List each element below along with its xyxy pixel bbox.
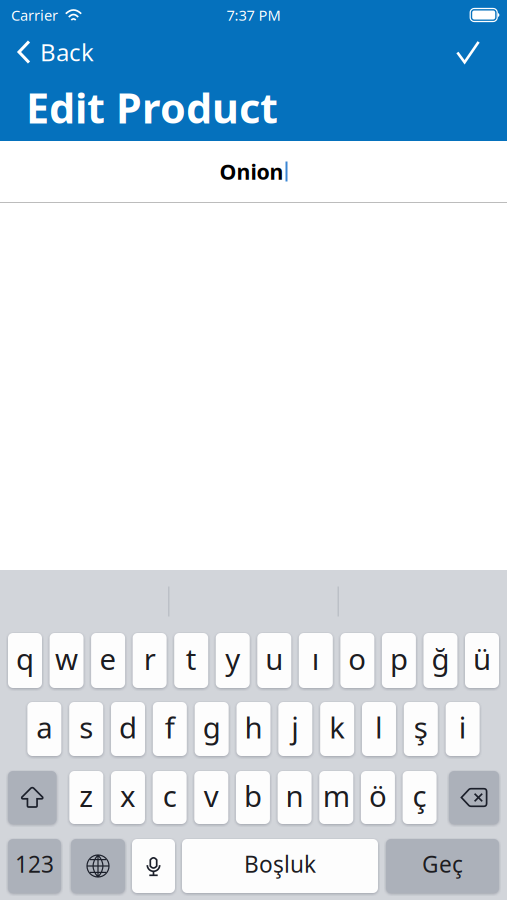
staticText: ğ <box>431 639 449 678</box>
staticText: t <box>186 639 197 678</box>
button[interactable]: z <box>69 771 103 824</box>
button[interactable]: x <box>111 771 145 824</box>
button[interactable]: ç <box>403 771 437 824</box>
staticText: ı <box>312 639 320 678</box>
button[interactable]: l <box>362 702 396 756</box>
staticText: v <box>204 776 219 815</box>
staticText: Boşluk <box>244 849 316 879</box>
button[interactable]: m <box>319 771 353 824</box>
button[interactable]: Delete <box>449 771 499 824</box>
button[interactable]: Save <box>436 30 507 74</box>
staticText: o <box>348 639 366 678</box>
button[interactable]: Geç <box>386 839 499 893</box>
button[interactable]: a <box>27 702 61 756</box>
button[interactable]: 123 <box>8 839 61 893</box>
button[interactable]: Dictation <box>132 839 175 893</box>
staticText: a <box>36 707 52 746</box>
button[interactable]: Back <box>0 30 108 74</box>
button[interactable]: t <box>174 633 208 688</box>
button[interactable]: Next keyboard <box>71 839 125 893</box>
button[interactable]: c <box>153 771 187 824</box>
staticText: r <box>144 639 156 678</box>
button[interactable]: u <box>257 633 291 688</box>
staticText: 123 <box>15 849 54 879</box>
staticText: k <box>329 707 345 746</box>
button[interactable]: Shift <box>8 771 56 824</box>
button[interactable]: r <box>133 633 167 688</box>
button[interactable]: ı <box>299 633 333 688</box>
button[interactable]: Boşluk <box>182 839 378 893</box>
button[interactable]: g <box>195 702 229 756</box>
button[interactable]: e <box>91 633 125 688</box>
staticText: Back <box>40 36 94 68</box>
staticText: p <box>390 639 408 678</box>
staticText: z <box>79 776 93 815</box>
staticText: i <box>459 707 467 746</box>
staticText: j <box>291 707 299 746</box>
staticText: y <box>225 639 240 678</box>
staticText: Carrier <box>11 5 58 25</box>
button[interactable]: k <box>320 702 354 756</box>
button[interactable]: h <box>236 702 270 756</box>
staticText: ş <box>414 707 428 746</box>
button[interactable]: f <box>153 702 187 756</box>
button[interactable]: p <box>382 633 416 688</box>
staticText: n <box>286 776 304 815</box>
button[interactable]: ğ <box>423 633 457 688</box>
staticText: h <box>244 707 262 746</box>
staticText: s <box>79 707 93 746</box>
button[interactable]: o <box>340 633 374 688</box>
staticText: q <box>16 639 34 678</box>
button[interactable]: ü <box>465 633 499 688</box>
button[interactable]: b <box>236 771 270 824</box>
button[interactable]: s <box>69 702 103 756</box>
staticText: x <box>120 776 136 815</box>
staticText: Onion <box>219 157 283 186</box>
button[interactable]: n <box>278 771 312 824</box>
staticText: e <box>100 639 117 678</box>
button[interactable]: q <box>8 633 42 688</box>
staticText: m <box>323 776 350 815</box>
staticText: c <box>163 776 177 815</box>
button[interactable]: j <box>278 702 312 756</box>
button[interactable]: ş <box>404 702 438 756</box>
button[interactable]: v <box>194 771 228 824</box>
staticText: Geç <box>422 849 463 879</box>
staticText: l <box>375 707 383 746</box>
staticText: ö <box>369 776 387 815</box>
staticText: Edit Product <box>26 80 278 135</box>
button[interactable]: y <box>216 633 250 688</box>
staticText: d <box>119 707 137 746</box>
staticText: b <box>244 776 262 815</box>
staticText: f <box>165 707 175 746</box>
staticText: g <box>203 707 221 746</box>
staticText: ü <box>473 639 491 678</box>
staticText: ç <box>413 776 427 815</box>
button[interactable]: w <box>49 633 83 688</box>
button[interactable]: i <box>446 702 480 756</box>
button[interactable]: d <box>111 702 145 756</box>
staticText: 7:37 PM <box>226 5 280 25</box>
staticText: u <box>265 639 283 678</box>
button[interactable]: ö <box>361 771 395 824</box>
staticText: w <box>55 639 78 678</box>
